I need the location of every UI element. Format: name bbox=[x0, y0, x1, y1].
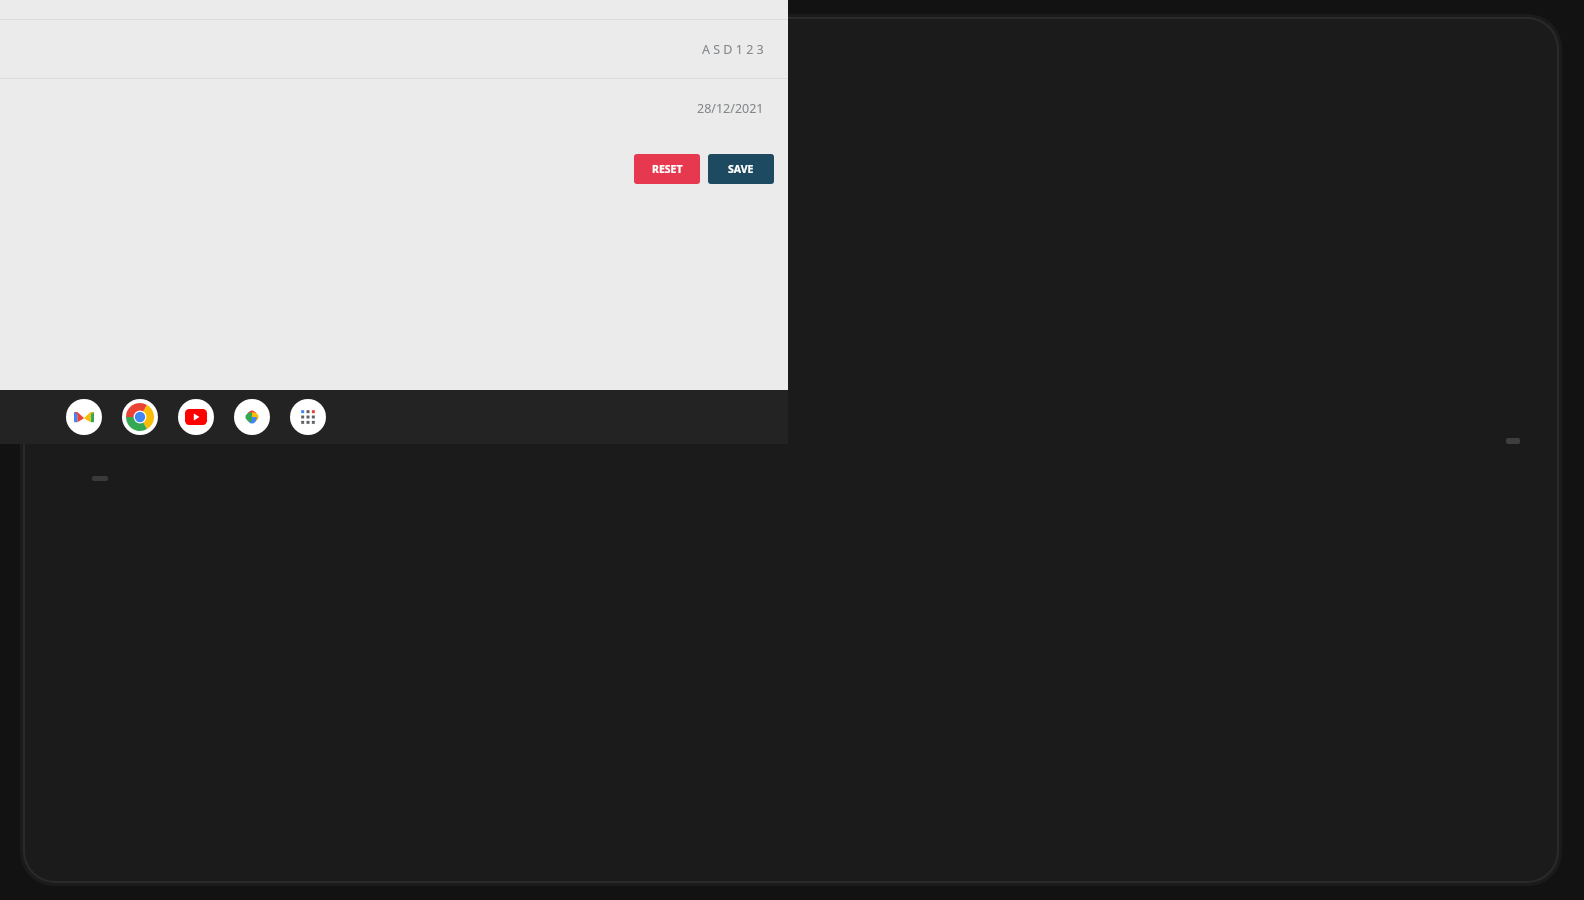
staticText: A S D 1 2 3 bbox=[702, 41, 764, 58]
staticText: RESET bbox=[652, 162, 683, 176]
staticText: 28/12/2021 bbox=[697, 100, 764, 117]
staticText: SAVE bbox=[728, 162, 754, 176]
button[interactable]: Gmail bbox=[66, 399, 102, 435]
button[interactable]: All apps bbox=[290, 399, 326, 435]
button[interactable]: Plate Number bbox=[0, 20, 788, 79]
button[interactable]: RESET bbox=[634, 154, 700, 184]
button[interactable]: YouTube bbox=[178, 399, 214, 435]
button[interactable]: Chrome bbox=[122, 399, 158, 435]
button[interactable]: Manufacture Year bbox=[0, 0, 788, 20]
button[interactable]: SAVE bbox=[708, 154, 774, 184]
button[interactable]: Google Photos bbox=[234, 399, 270, 435]
button[interactable]: Purchase Date bbox=[0, 79, 788, 137]
